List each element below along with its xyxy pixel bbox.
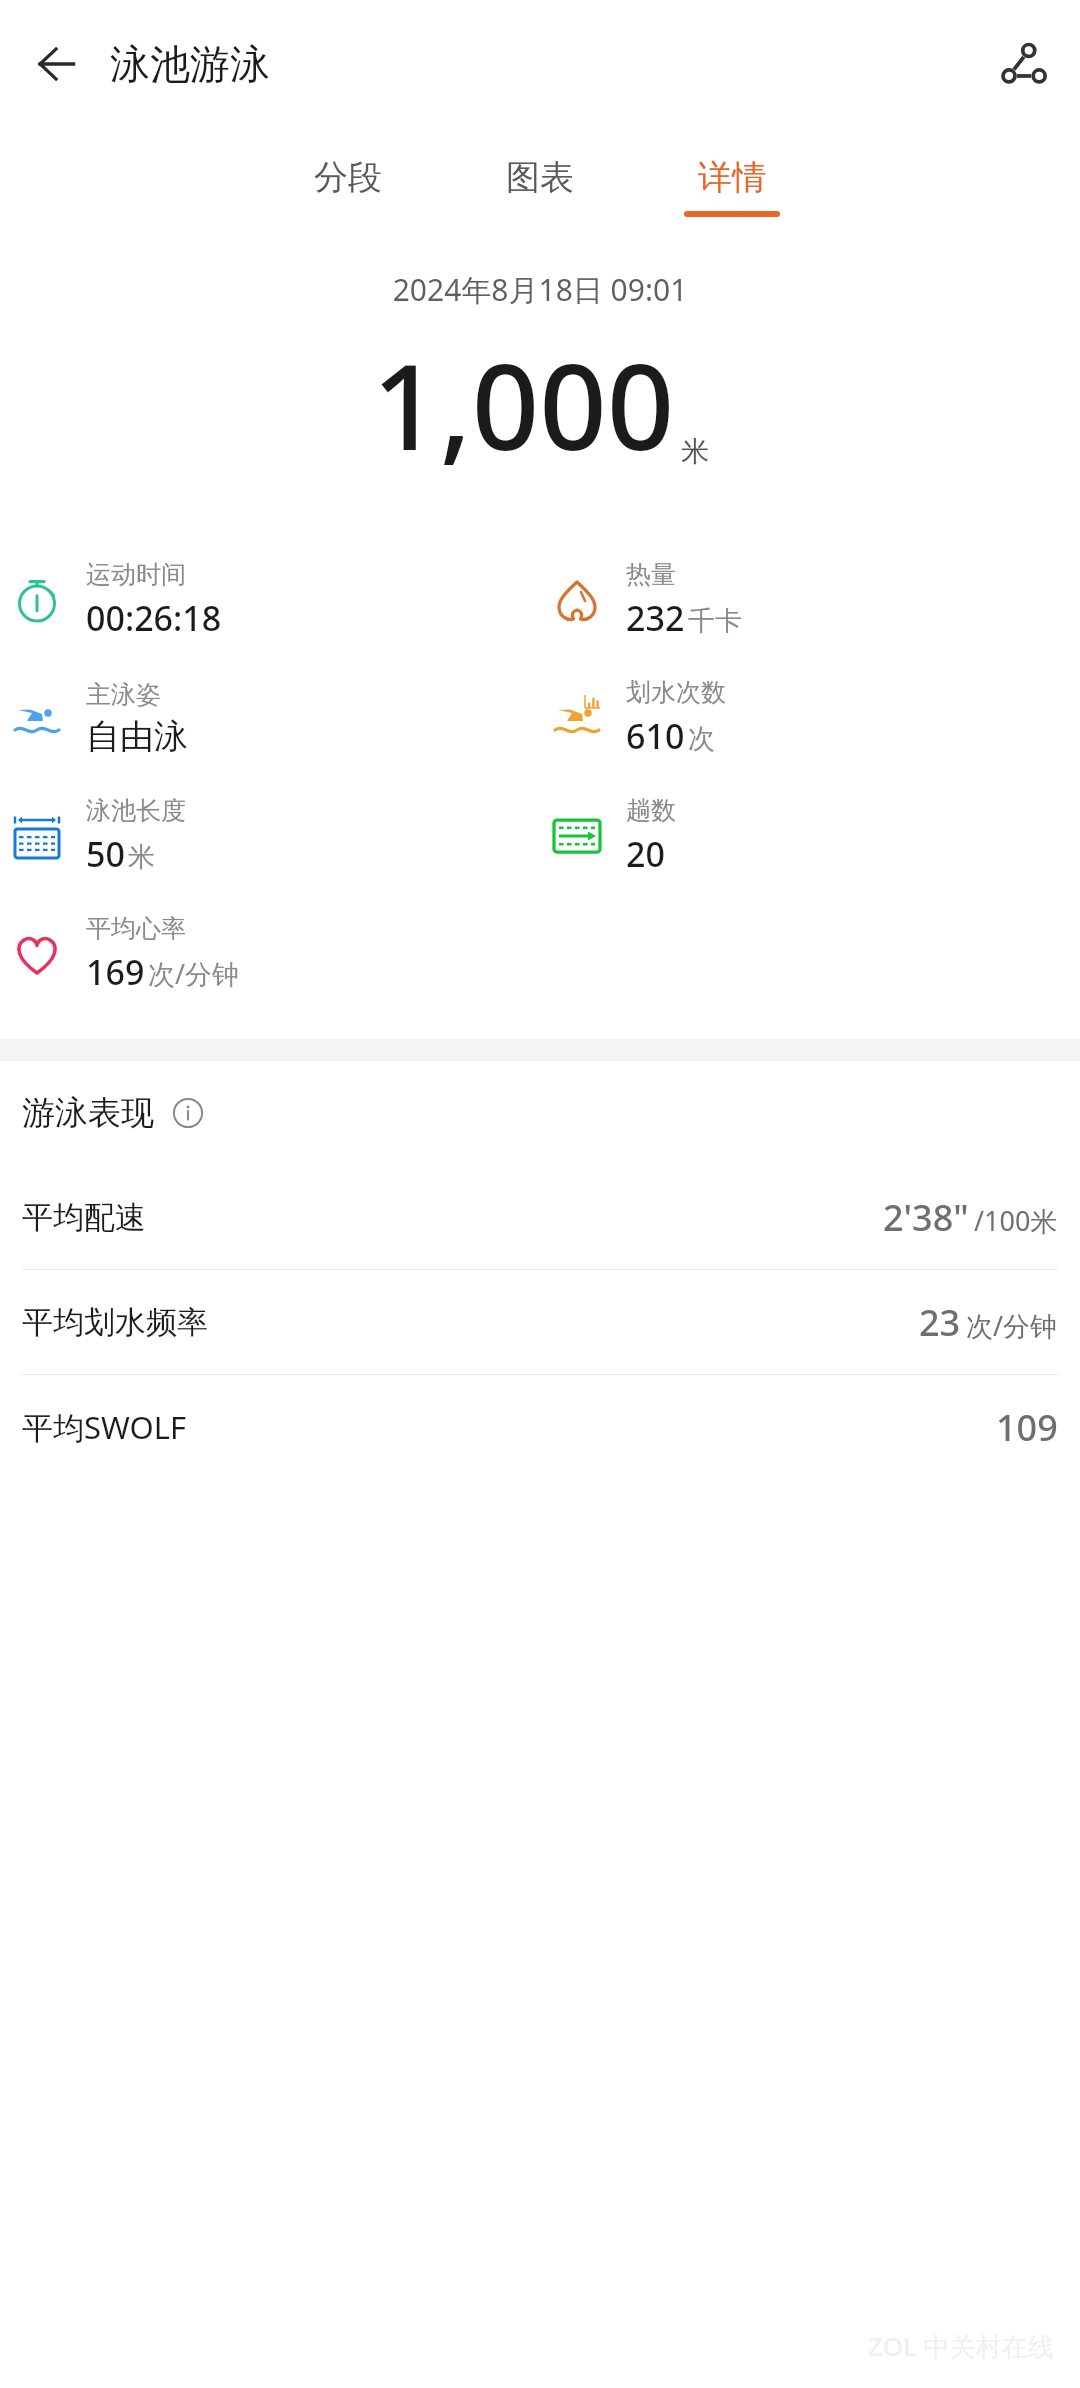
staticText: 游泳表现: [22, 1092, 154, 1134]
staticText: 平均配速: [22, 1198, 146, 1237]
staticText: 趟数: [626, 795, 676, 826]
staticText: 20: [626, 831, 665, 877]
staticText: 109: [996, 1403, 1058, 1452]
button[interactable]: Share: [990, 32, 1054, 96]
staticText: 米: [128, 840, 155, 874]
staticText: 次/分钟: [966, 1307, 1058, 1344]
staticText: 热量: [626, 559, 676, 590]
button[interactable]: 划水次数: [540, 659, 1080, 777]
staticText: 千卡: [688, 604, 742, 638]
button[interactable]: 平均心率: [0, 895, 540, 1013]
staticText: 169: [86, 949, 145, 995]
staticText: 主泳姿: [86, 679, 161, 710]
staticText: 划水次数: [626, 677, 726, 708]
button[interactable]: 详情: [670, 150, 794, 223]
staticText: 00:26:18: [86, 595, 222, 641]
button[interactable]: 图表: [478, 150, 602, 223]
staticText: 次/分钟: [148, 955, 240, 992]
staticText: 50: [86, 831, 125, 877]
button[interactable]: Info: [168, 1093, 208, 1133]
staticText: 次: [688, 722, 715, 756]
button[interactable]: 运动时间: [0, 541, 540, 659]
staticText: 自由泳: [86, 715, 188, 758]
staticText: 232: [626, 595, 685, 641]
button[interactable]: 平均SWOLF: [0, 1375, 1080, 1479]
staticText: 图表: [506, 156, 574, 199]
staticText: 运动时间: [86, 559, 186, 590]
staticText: 泳池长度: [86, 795, 186, 826]
staticText: 610: [626, 713, 685, 759]
button[interactable]: 平均配速: [0, 1165, 1080, 1269]
staticText: /100米: [974, 1202, 1058, 1239]
staticText: 23: [919, 1298, 961, 1347]
staticText: 2024年8月18日 09:01: [0, 269, 1080, 310]
button[interactable]: Back: [26, 34, 86, 94]
button[interactable]: 泳池长度: [0, 777, 540, 895]
staticText: 平均心率: [86, 913, 186, 944]
button[interactable]: 趟数: [540, 777, 1080, 895]
staticText: 平均SWOLF: [22, 1406, 187, 1448]
button[interactable]: 主泳姿: [0, 659, 540, 777]
staticText: 1,000: [372, 324, 675, 485]
staticText: 2'38": [883, 1193, 969, 1242]
staticText: 分段: [314, 156, 382, 199]
staticText: 详情: [698, 156, 766, 199]
button[interactable]: 热量: [540, 541, 1080, 659]
staticText: 米: [681, 434, 709, 469]
staticText: 平均划水频率: [22, 1303, 208, 1342]
staticText: ZOL 中关村在线: [868, 2328, 1054, 2364]
button[interactable]: 分段: [286, 150, 410, 223]
staticText: 泳池游泳: [110, 39, 270, 89]
button[interactable]: 平均划水频率: [0, 1270, 1080, 1374]
